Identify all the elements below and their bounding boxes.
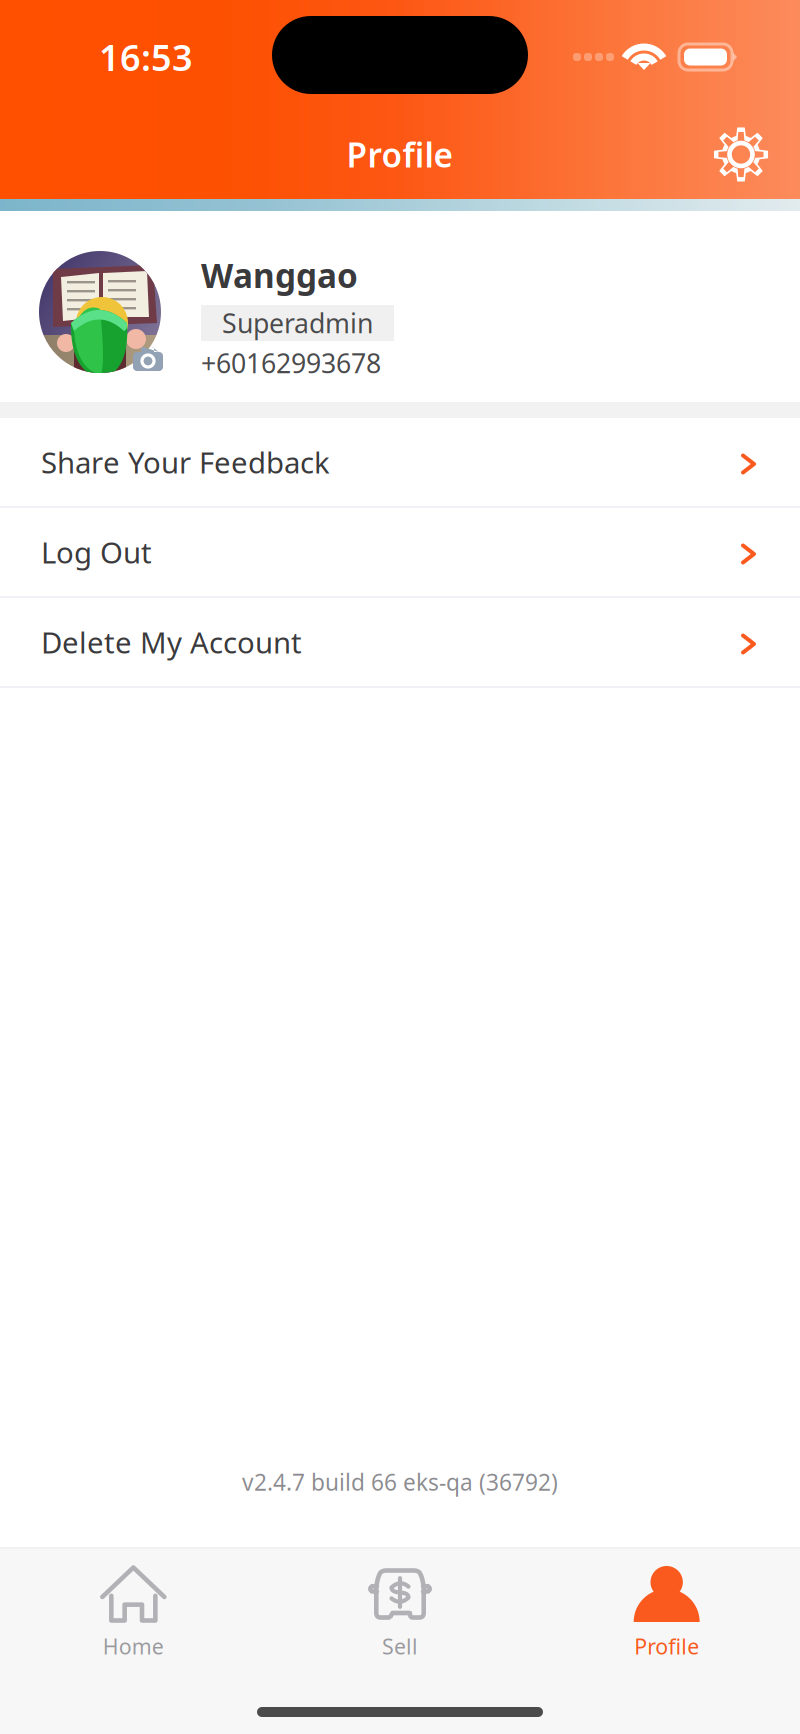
staticText: Share Your Feedback (41, 442, 330, 481)
staticText: +60162993678 (201, 345, 381, 381)
staticText: Log Out (41, 532, 152, 571)
button[interactable]: Share Your Feedback (0, 418, 800, 508)
staticText: Wanggao (201, 253, 358, 297)
button[interactable]: Home (0, 1566, 267, 1660)
staticText: Profile (634, 1632, 699, 1660)
staticText: v2.4.7 build 66 eks-qa (36792) (242, 1467, 558, 1497)
button[interactable]: Log Out (0, 508, 800, 598)
button[interactable]: Delete My Account (0, 598, 800, 688)
staticText: Profile (346, 132, 453, 177)
staticText: Sell (382, 1632, 418, 1660)
button[interactable]: Sell (267, 1566, 533, 1660)
staticText: Superadmin (222, 305, 373, 341)
staticText: 16:53 (99, 33, 193, 81)
staticText: Home (103, 1632, 164, 1660)
button[interactable]: Settings (701, 114, 781, 194)
staticText: Delete My Account (41, 622, 302, 661)
button[interactable]: Profile (533, 1566, 800, 1660)
